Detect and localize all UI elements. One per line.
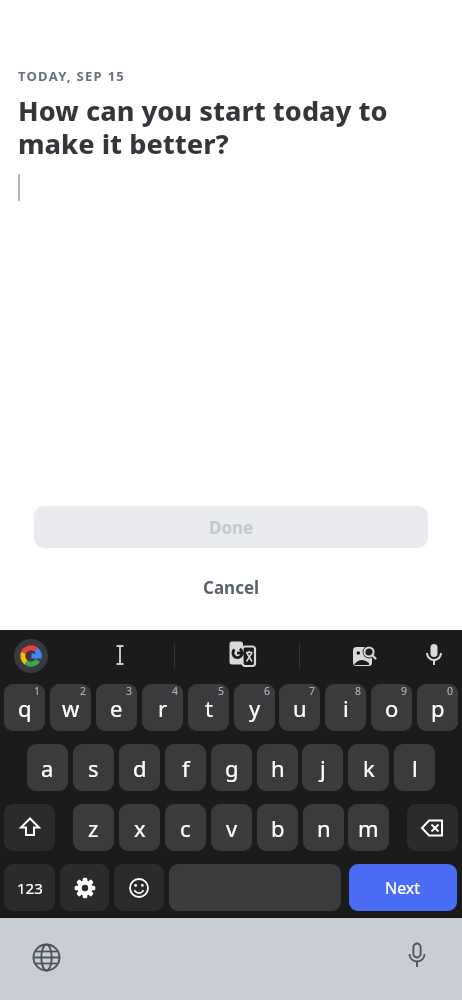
button[interactable]: c — [165, 804, 206, 851]
button[interactable]: o — [371, 684, 412, 731]
staticText: 7 — [309, 684, 316, 698]
staticText: u — [293, 693, 307, 723]
staticText: 123 — [17, 878, 43, 898]
staticText: 2 — [80, 684, 87, 698]
staticText: TODAY, SEP 15 — [18, 67, 126, 85]
staticText: Cancel — [203, 576, 260, 599]
staticText: 1 — [34, 684, 41, 698]
button[interactable]: m — [348, 804, 389, 851]
staticText: b — [271, 813, 285, 843]
button[interactable]: Next — [349, 864, 457, 911]
button[interactable]: 123 — [4, 864, 55, 911]
staticText: x — [134, 813, 146, 843]
staticText: j — [320, 753, 326, 783]
button[interactable]: l — [394, 744, 435, 791]
button[interactable]: f — [165, 744, 206, 791]
staticText: n — [317, 813, 331, 843]
staticText: 8 — [355, 684, 362, 698]
staticText: q — [18, 693, 32, 723]
staticText: d — [133, 753, 147, 783]
button[interactable]: s — [73, 744, 114, 791]
button[interactable]: e — [96, 684, 137, 731]
button[interactable]: v — [211, 804, 252, 851]
staticText: z — [88, 813, 99, 843]
button[interactable] — [14, 639, 48, 673]
staticText: l — [412, 753, 418, 783]
button[interactable] — [113, 644, 127, 666]
button[interactable] — [114, 864, 164, 911]
staticText: e — [110, 693, 123, 723]
staticText: p — [431, 693, 445, 723]
staticText: f — [182, 753, 190, 783]
button[interactable]: x — [119, 804, 160, 851]
button[interactable] — [407, 804, 458, 851]
staticText: m — [358, 813, 379, 843]
button[interactable]: p — [417, 684, 458, 731]
staticText: 3 — [126, 684, 133, 698]
staticText: k — [363, 753, 375, 783]
staticText: 9 — [401, 684, 408, 698]
staticText: i — [343, 693, 349, 723]
button[interactable] — [33, 944, 60, 971]
button[interactable]: u — [279, 684, 320, 731]
button[interactable]: h — [257, 744, 298, 791]
staticText: 0 — [447, 684, 454, 698]
button[interactable] — [4, 804, 55, 851]
button[interactable]: a — [27, 744, 68, 791]
button[interactable]: d — [119, 744, 160, 791]
staticText: Next — [385, 877, 421, 899]
staticText: How can you start today to make it bette… — [18, 92, 388, 161]
staticText: r — [158, 693, 168, 723]
staticText: g — [225, 753, 239, 783]
staticText: o — [385, 693, 399, 723]
button[interactable]: g — [211, 744, 252, 791]
button[interactable]: i — [325, 684, 366, 731]
button[interactable] — [352, 644, 377, 669]
button[interactable]: n — [303, 804, 344, 851]
button[interactable]: z — [73, 804, 114, 851]
button[interactable]: k — [348, 744, 389, 791]
staticText: Done — [209, 516, 254, 539]
button[interactable] — [406, 942, 428, 972]
button[interactable]: y — [234, 684, 275, 731]
button[interactable] — [60, 864, 109, 911]
button[interactable] — [229, 640, 257, 670]
staticText: s — [88, 753, 99, 783]
button[interactable] — [424, 642, 444, 670]
staticText: v — [226, 813, 238, 843]
staticText: w — [62, 693, 80, 723]
staticText: a — [41, 753, 54, 783]
staticText: 5 — [218, 684, 225, 698]
button[interactable]: r — [142, 684, 183, 731]
button[interactable] — [169, 864, 341, 911]
button[interactable]: w — [50, 684, 91, 731]
staticText: y — [249, 693, 261, 723]
staticText: t — [205, 693, 213, 723]
button[interactable]: t — [188, 684, 229, 731]
staticText: 6 — [264, 684, 271, 698]
button[interactable]: Done — [34, 506, 428, 548]
staticText: c — [180, 813, 191, 843]
staticText: h — [271, 753, 285, 783]
staticText: 4 — [172, 684, 179, 698]
button[interactable]: b — [257, 804, 298, 851]
button[interactable]: Cancel — [0, 576, 462, 599]
button[interactable]: j — [302, 744, 343, 791]
button[interactable]: q — [4, 684, 45, 731]
